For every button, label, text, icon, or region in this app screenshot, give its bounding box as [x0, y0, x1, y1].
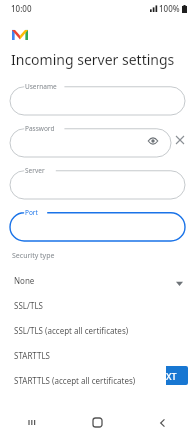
staticText: NEXT [154, 370, 177, 382]
staticText: STARTTLS [14, 350, 51, 361]
button[interactable]: Username [10, 81, 185, 115]
button[interactable]: STARTTLS (accept all certificates) [6, 368, 166, 393]
button[interactable]: Server [10, 165, 185, 199]
button[interactable]: Show password [146, 134, 160, 148]
button[interactable]: Port [10, 207, 185, 241]
button[interactable]: SSL/TLS [6, 293, 166, 318]
staticText: 100% [159, 3, 180, 14]
staticText: SSL/TLS (accept all certificates) [14, 325, 129, 336]
button[interactable]: Recents [0, 409, 65, 436]
button[interactable]: STARTTLS [6, 343, 166, 368]
staticText: Username [25, 82, 57, 91]
button[interactable]: Back [130, 409, 195, 436]
staticText: 10:00 [11, 3, 32, 14]
button[interactable]: None [6, 268, 166, 293]
button[interactable]: Security type dropdown [172, 276, 186, 290]
staticText: Server [25, 166, 45, 175]
staticText: Port [25, 208, 38, 217]
button[interactable]: Home [65, 409, 130, 436]
button[interactable]: Password [10, 123, 171, 157]
button[interactable]: SSL/TLS (accept all certificates) [6, 318, 166, 343]
staticText: Security type [12, 251, 55, 261]
staticText: Password [25, 124, 55, 133]
staticText: None [14, 275, 35, 286]
button[interactable]: Clear password [173, 133, 187, 147]
staticText: STARTTLS (accept all certificates) [14, 375, 136, 386]
staticText: SSL/TLS [14, 300, 43, 311]
staticText: Incoming server settings [11, 50, 175, 69]
button[interactable]: NEXT [142, 366, 188, 385]
